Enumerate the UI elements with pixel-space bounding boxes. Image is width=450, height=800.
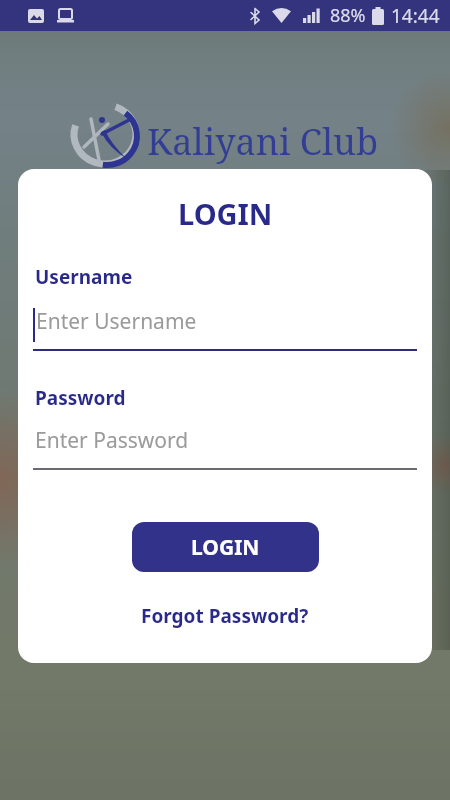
- staticText: LOGIN: [191, 533, 260, 562]
- staticText: Username: [35, 264, 133, 290]
- staticText: Kaliyani Club: [147, 117, 379, 166]
- staticText: Enter Username: [36, 307, 197, 336]
- button[interactable]: LOGIN: [132, 522, 319, 572]
- button[interactable]: Enter Password: [33, 420, 417, 470]
- button[interactable]: Enter Username: [33, 301, 417, 351]
- staticText: Password: [35, 385, 126, 411]
- staticText: LOGIN: [178, 194, 273, 233]
- button[interactable]: Forgot Password?: [141, 603, 309, 629]
- staticText: 88%: [330, 3, 366, 28]
- staticText: Enter Password: [35, 426, 189, 455]
- staticText: 14:44: [391, 3, 440, 29]
